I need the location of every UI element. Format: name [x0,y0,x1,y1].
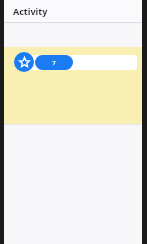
staticText: Activity [13,5,48,17]
button[interactable]: 7 [4,47,142,124]
staticText: 7 [52,59,56,67]
button[interactable] [19,55,137,70]
button[interactable]: Favourite activity [14,52,34,72]
button[interactable]: 7 [35,55,73,70]
